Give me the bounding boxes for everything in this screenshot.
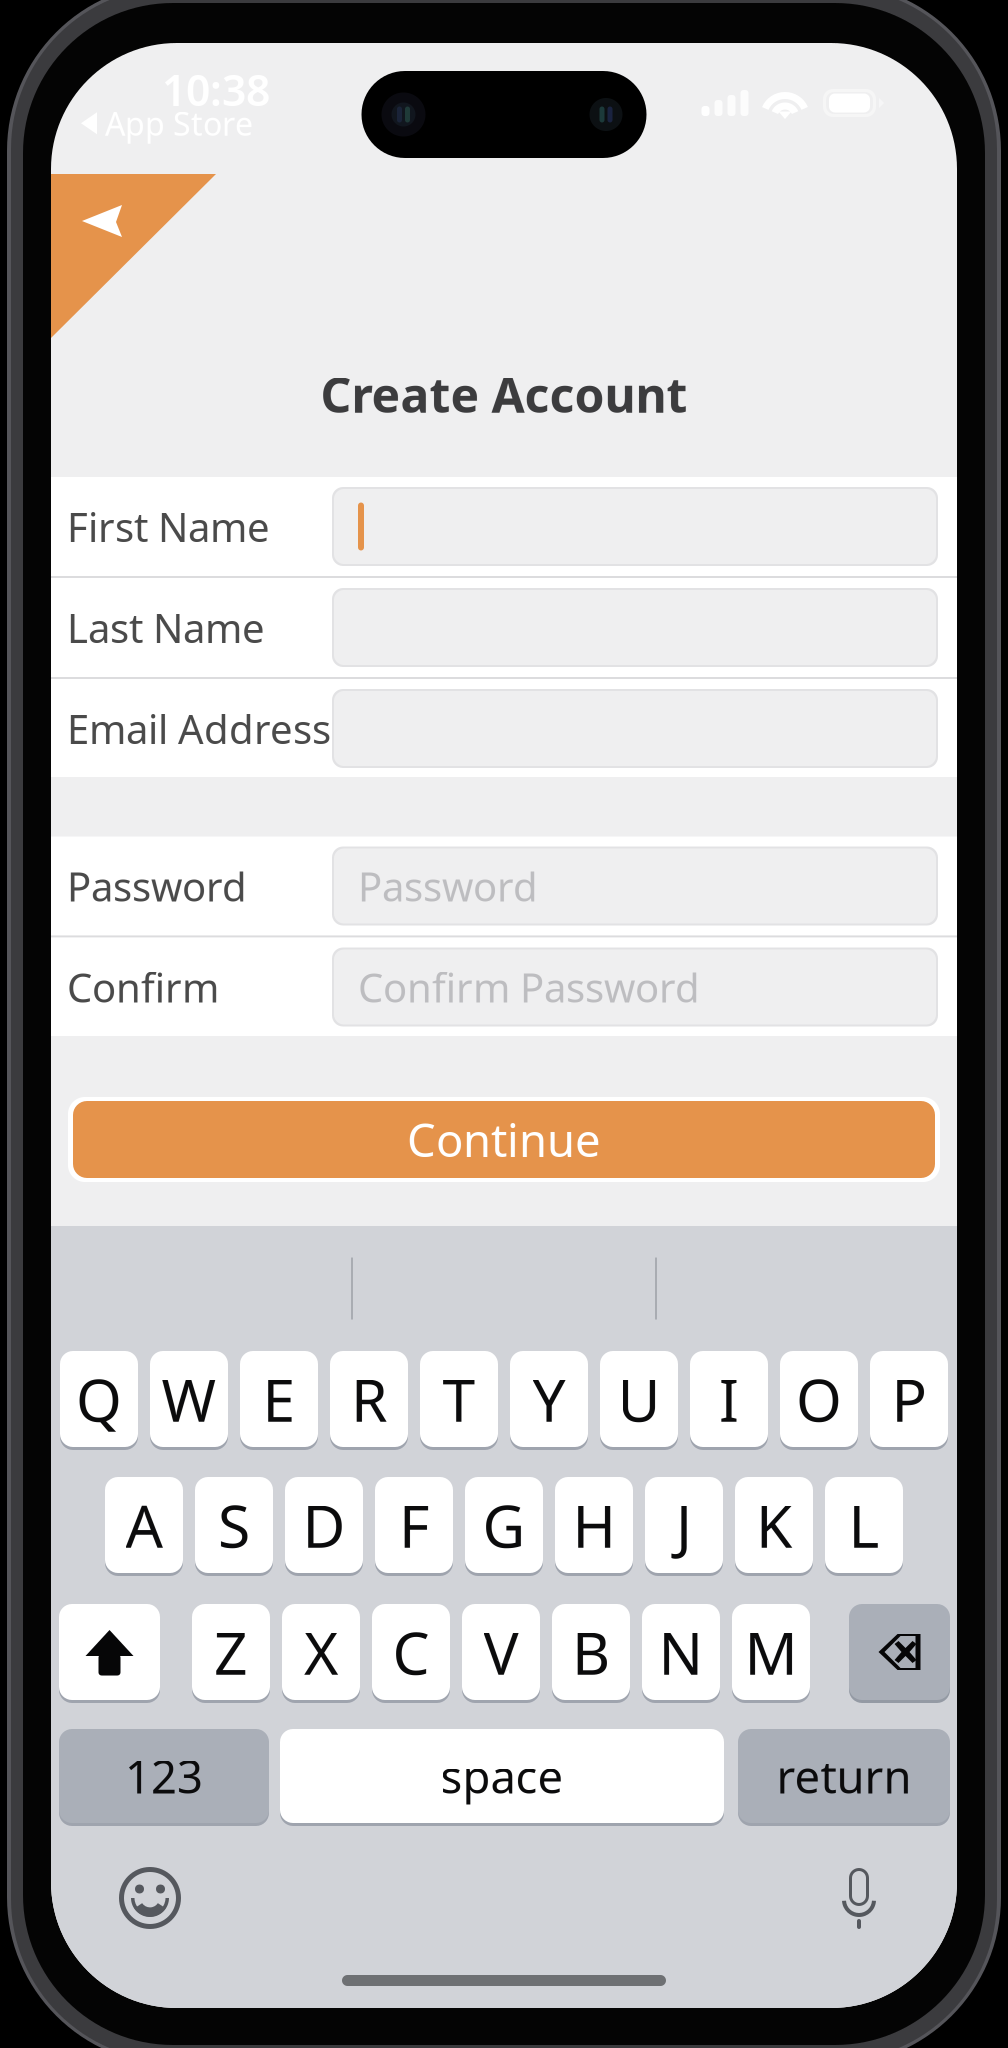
button[interactable]: W	[150, 1351, 228, 1447]
button[interactable]: return	[738, 1729, 950, 1823]
button[interactable]: G	[465, 1477, 543, 1573]
staticText: Confirm Password	[358, 960, 700, 1013]
staticText: Last Name	[67, 601, 265, 654]
staticText: G	[482, 1486, 525, 1564]
staticText: App Store	[105, 102, 253, 144]
button[interactable]: S	[195, 1477, 273, 1573]
staticText: X	[304, 1613, 338, 1691]
button[interactable]: M	[732, 1604, 810, 1700]
button[interactable]: L	[825, 1477, 903, 1573]
button[interactable]: A	[105, 1477, 183, 1573]
staticText: M	[744, 1613, 797, 1691]
staticText: N	[658, 1613, 703, 1691]
staticText: T	[442, 1360, 475, 1438]
button[interactable]: Y	[510, 1351, 588, 1447]
staticText: U	[617, 1360, 660, 1438]
staticText: Email Address	[67, 702, 331, 755]
button[interactable]: Continue	[68, 1097, 940, 1182]
button[interactable]: Q	[60, 1351, 138, 1447]
button[interactable]: Delete	[849, 1604, 950, 1700]
staticText: 123	[125, 1746, 203, 1806]
button[interactable]: Emoji	[119, 1867, 181, 1929]
button[interactable]: O	[780, 1351, 858, 1447]
button[interactable]: Back	[51, 174, 216, 338]
button[interactable]: F	[375, 1477, 453, 1573]
button[interactable]: space	[280, 1729, 724, 1823]
staticText: R	[351, 1360, 387, 1438]
button[interactable]: Z	[192, 1604, 270, 1700]
staticText: 10:38	[162, 61, 270, 118]
staticText: Y	[532, 1360, 565, 1438]
staticText: D	[302, 1486, 345, 1564]
button[interactable]: P	[870, 1351, 948, 1447]
staticText: S	[218, 1486, 250, 1564]
button[interactable]: I	[690, 1351, 768, 1447]
staticText: J	[676, 1486, 692, 1564]
button[interactable]: J	[645, 1477, 723, 1573]
staticText: V	[483, 1613, 518, 1691]
staticText: Confirm	[67, 960, 219, 1013]
staticText: Continue	[407, 1109, 601, 1170]
button[interactable]: X	[282, 1604, 360, 1700]
staticText: B	[572, 1613, 610, 1691]
button[interactable]: D	[285, 1477, 363, 1573]
button[interactable]: C	[372, 1604, 450, 1700]
staticText: return	[776, 1746, 911, 1806]
staticText: E	[262, 1360, 295, 1438]
staticText: Password	[358, 859, 538, 912]
staticText: H	[572, 1486, 615, 1564]
staticText: W	[161, 1360, 216, 1438]
button[interactable]: Shift	[59, 1604, 160, 1700]
button[interactable]: K	[735, 1477, 813, 1573]
button[interactable]: N	[642, 1604, 720, 1700]
staticText: C	[392, 1613, 429, 1691]
button[interactable]: U	[600, 1351, 678, 1447]
button[interactable]: Dictate	[837, 1863, 881, 1933]
button[interactable]: E	[240, 1351, 318, 1447]
staticText: L	[848, 1486, 879, 1564]
button[interactable]: R	[330, 1351, 408, 1447]
staticText: Password	[67, 859, 247, 912]
staticText: Q	[76, 1360, 122, 1438]
button[interactable]: V	[462, 1604, 540, 1700]
staticText: space	[440, 1746, 563, 1806]
staticText: Create Account	[320, 362, 687, 426]
staticText: F	[399, 1486, 429, 1564]
staticText: O	[796, 1360, 842, 1438]
staticText: Z	[214, 1613, 248, 1691]
staticText: A	[125, 1486, 162, 1564]
button[interactable]: B	[552, 1604, 630, 1700]
button[interactable]: 123	[59, 1729, 269, 1823]
staticText: P	[891, 1360, 926, 1438]
staticText: K	[756, 1486, 792, 1564]
staticText: First Name	[67, 500, 270, 553]
staticText: I	[719, 1360, 739, 1438]
button[interactable]: T	[420, 1351, 498, 1447]
button[interactable]: H	[555, 1477, 633, 1573]
